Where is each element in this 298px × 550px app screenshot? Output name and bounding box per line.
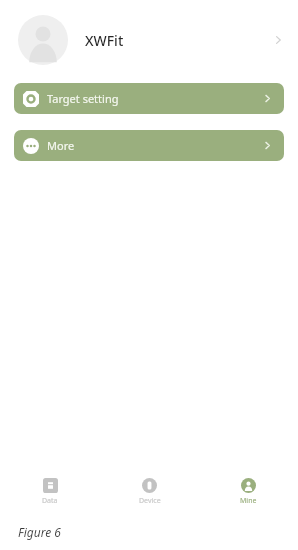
button[interactable]: XWFit — [0, 0, 298, 80]
staticText: More — [47, 138, 75, 153]
other: Open profile — [271, 33, 285, 47]
button[interactable]: Target setting — [14, 83, 284, 114]
button[interactable]: Device — [100, 470, 199, 514]
staticText: XWFit — [85, 31, 124, 50]
button[interactable]: More — [14, 130, 284, 161]
staticText: Mine — [240, 496, 257, 506]
staticText: Data — [42, 496, 58, 506]
button[interactable]: Mine — [199, 470, 298, 514]
staticText: Target setting — [47, 91, 119, 106]
button[interactable]: Data — [0, 470, 100, 514]
staticText: Figure 6 — [18, 524, 61, 540]
staticText: Device — [139, 496, 161, 506]
